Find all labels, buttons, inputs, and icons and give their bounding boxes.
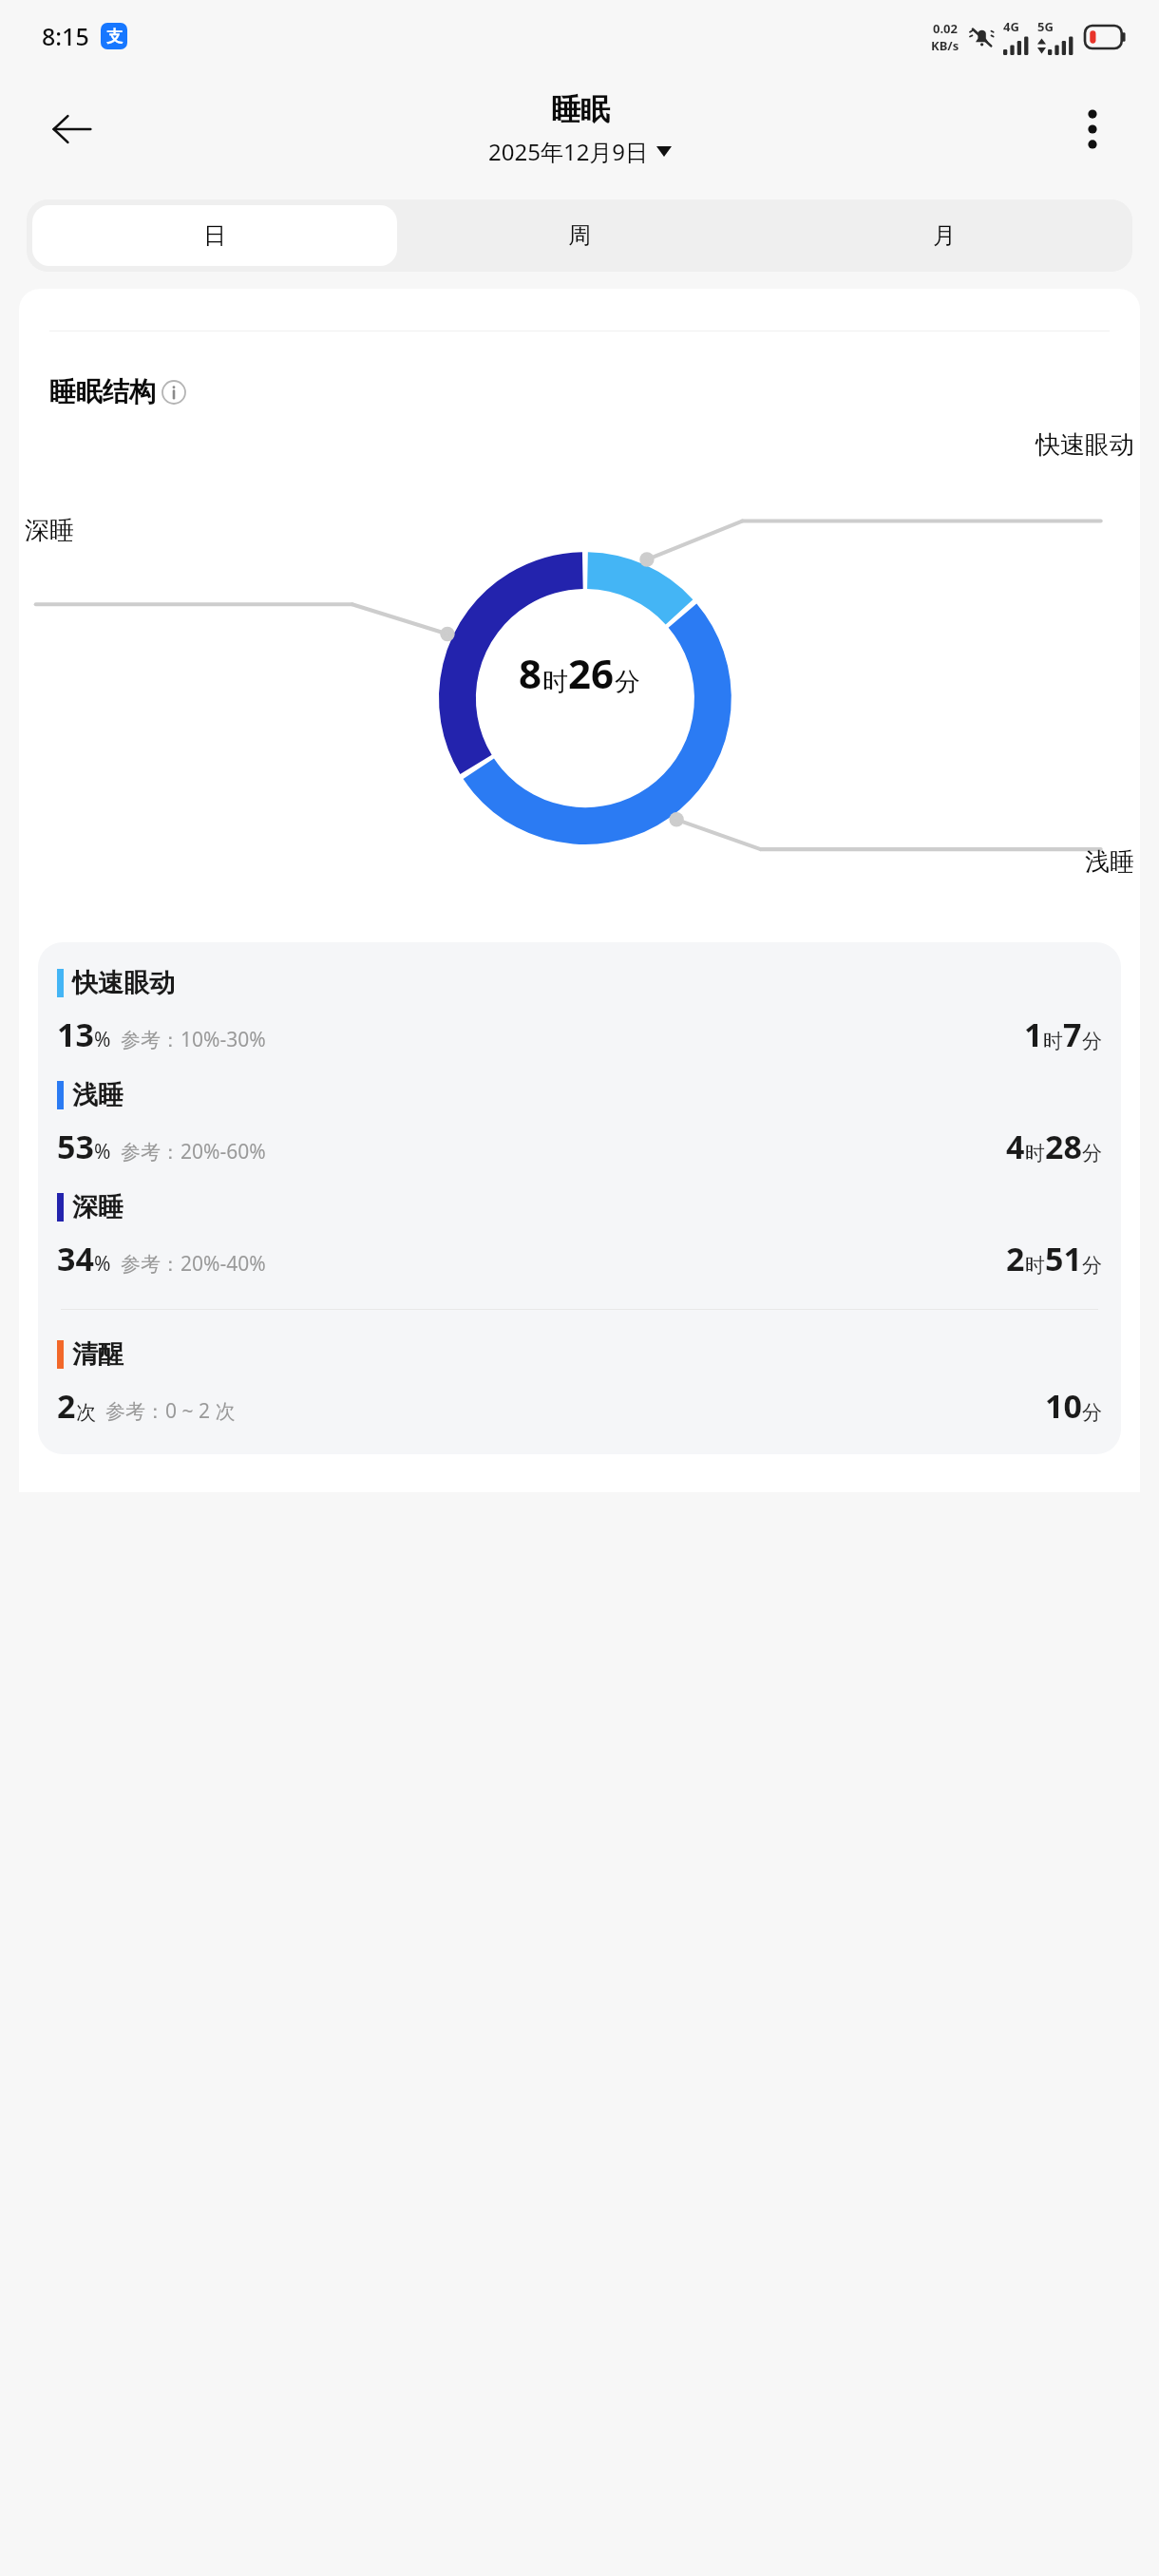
- staticText: 参考：0 ~ 2 次: [105, 1397, 236, 1425]
- staticText: 34: [57, 1237, 94, 1280]
- staticText: 7: [1063, 1013, 1082, 1056]
- staticText: 4: [1006, 1125, 1025, 1168]
- staticText: 分: [1082, 1253, 1102, 1278]
- staticText: 2025年12月9日: [488, 136, 649, 167]
- staticText: 周: [568, 221, 591, 250]
- staticText: 2: [57, 1384, 76, 1428]
- button[interactable]: 2025年12月9日: [488, 136, 672, 167]
- staticText: 时: [1025, 1141, 1045, 1165]
- button[interactable]: Info: [161, 380, 186, 405]
- staticText: 睡眠: [551, 91, 610, 128]
- staticText: 分: [615, 666, 640, 698]
- staticText: 次: [76, 1400, 96, 1425]
- button[interactable]: 浅睡: [57, 1079, 1102, 1168]
- staticText: 分: [1082, 1141, 1102, 1165]
- button[interactable]: 日: [32, 205, 397, 266]
- button[interactable]: Back: [42, 99, 103, 160]
- staticText: 8: [519, 646, 542, 700]
- staticText: %: [94, 1026, 111, 1053]
- staticText: 浅睡: [1085, 846, 1134, 878]
- staticText: 深睡: [25, 515, 74, 546]
- staticText: 53: [57, 1125, 94, 1168]
- staticText: 13: [57, 1013, 94, 1056]
- staticText: KB/s: [931, 37, 959, 54]
- staticText: 时: [1043, 1029, 1063, 1053]
- staticText: 51: [1045, 1237, 1082, 1280]
- button[interactable]: 清醒: [57, 1338, 1102, 1428]
- staticText: 睡眠结构: [49, 375, 156, 408]
- button[interactable]: 快速眼动: [57, 967, 1102, 1056]
- staticText: 4G: [1003, 18, 1019, 35]
- staticText: 26: [568, 646, 615, 700]
- staticText: 时: [1025, 1253, 1045, 1278]
- staticText: 快速眼动: [1035, 429, 1134, 461]
- staticText: 10: [1045, 1384, 1082, 1428]
- staticText: 参考：20%-60%: [121, 1138, 266, 1165]
- button[interactable]: 周: [397, 205, 762, 266]
- button[interactable]: 月: [762, 205, 1127, 266]
- staticText: 参考：20%-40%: [121, 1250, 266, 1278]
- staticText: 清醒: [72, 1338, 123, 1371]
- button[interactable]: More options: [1064, 101, 1121, 158]
- staticText: 月: [933, 221, 956, 250]
- staticText: 5G: [1037, 18, 1054, 35]
- staticText: 深睡: [72, 1191, 123, 1223]
- button[interactable]: 深睡: [57, 1191, 1102, 1280]
- staticText: 日: [203, 221, 226, 250]
- staticText: %: [94, 1138, 111, 1165]
- staticText: 快速眼动: [72, 967, 175, 999]
- staticText: %: [94, 1250, 111, 1278]
- staticText: 8:15: [42, 20, 89, 52]
- staticText: 分: [1082, 1029, 1102, 1053]
- staticText: 28: [1045, 1125, 1082, 1168]
- staticText: 时: [542, 666, 568, 698]
- staticText: 0.02: [933, 20, 958, 37]
- staticText: 支: [106, 27, 123, 47]
- staticText: 分: [1082, 1400, 1102, 1425]
- staticText: 1: [1024, 1013, 1043, 1056]
- staticText: 2: [1006, 1237, 1025, 1280]
- staticText: 浅睡: [72, 1079, 123, 1111]
- staticText: 参考：10%-30%: [121, 1026, 266, 1053]
